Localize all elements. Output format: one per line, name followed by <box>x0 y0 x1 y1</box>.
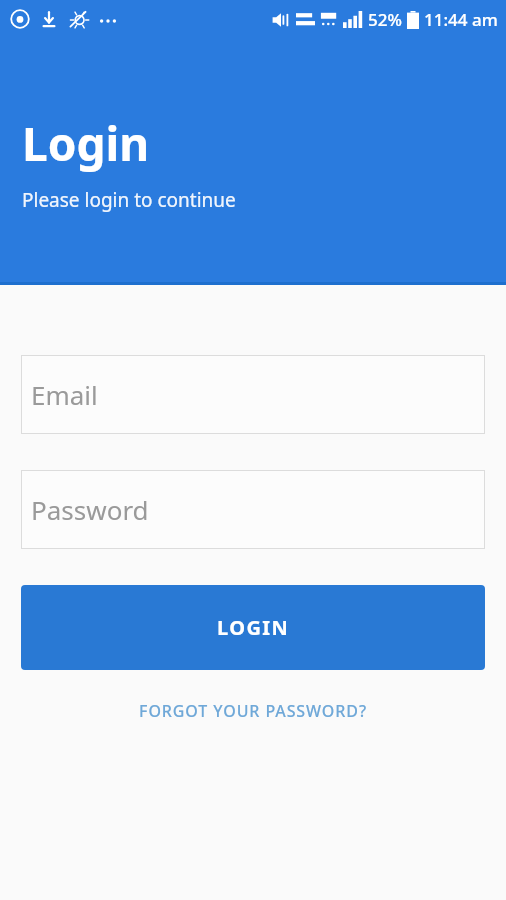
button[interactable]: FORGOT YOUR PASSWORD? <box>0 686 506 736</box>
staticText: 52% <box>368 8 402 31</box>
button[interactable]: Password <box>21 470 485 549</box>
staticText: Please login to continue <box>22 187 236 213</box>
button[interactable]: Email <box>21 355 485 434</box>
staticText: FORGOT YOUR PASSWORD? <box>139 700 367 722</box>
staticText: Password <box>31 492 149 527</box>
button[interactable]: LOGIN <box>21 585 485 670</box>
staticText: LOGIN <box>217 614 290 641</box>
staticText: Email <box>31 377 98 412</box>
staticText: 11:44 am <box>424 8 498 31</box>
staticText: Login <box>22 112 150 175</box>
